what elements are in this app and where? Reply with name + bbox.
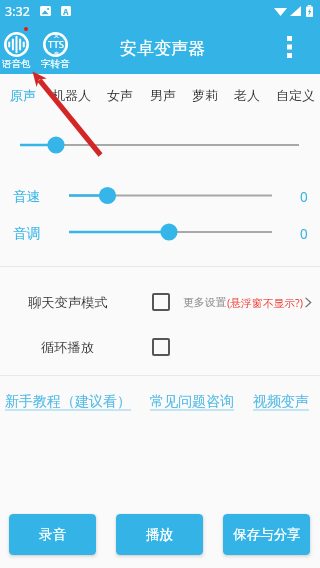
staticText: 0 — [300, 188, 308, 206]
button[interactable]: 男声 — [150, 87, 176, 103]
button[interactable]: Slider — [0, 0, 320, 568]
button[interactable]: Checkbox — [151, 292, 171, 312]
staticText: 0 — [300, 225, 308, 243]
staticText: 原声 — [10, 87, 36, 103]
staticText: A — [63, 6, 69, 16]
staticText: 字转音 — [41, 58, 70, 70]
staticText: 老人 — [234, 87, 260, 103]
staticText: 安卓变声器 — [120, 38, 205, 59]
staticText: 语音包 — [2, 58, 31, 70]
staticText: 保存与分享 — [233, 526, 301, 543]
button[interactable]: 语音包 — [2, 32, 31, 70]
button[interactable]: 录音 — [9, 514, 96, 555]
button[interactable]: 聊天变声模式 — [0, 283, 136, 321]
staticText: 自定义 — [276, 87, 315, 103]
staticText: 萝莉 — [192, 87, 218, 103]
button[interactable]: 新手教程（建议看） — [5, 393, 131, 411]
button[interactable]: 女声 — [107, 87, 133, 103]
button[interactable]: Slider — [0, 0, 320, 568]
button[interactable]: 萝莉 — [192, 87, 218, 103]
button[interactable]: 老人 — [234, 87, 260, 103]
staticText: 循环播放 — [41, 339, 95, 356]
staticText: 视频变声 — [253, 393, 309, 411]
staticText: 常见问题咨询 — [150, 393, 234, 411]
staticText: 机器人 — [52, 87, 91, 103]
button[interactable]: 循环播放 — [0, 330, 136, 364]
button[interactable]: Slider — [0, 0, 320, 568]
staticText: 播放 — [146, 526, 173, 543]
button[interactable]: More options — [272, 30, 306, 64]
staticText: 新手教程（建议看） — [5, 393, 131, 411]
staticText: 聊天变声模式 — [28, 294, 108, 311]
staticText: 男声 — [150, 87, 176, 103]
staticText: TTS — [48, 38, 64, 51]
button[interactable]: 播放 — [116, 514, 203, 555]
button[interactable]: 文 — [41, 32, 70, 70]
button[interactable]: 原声 — [10, 87, 36, 103]
button[interactable]: 常见问题咨询 — [150, 393, 234, 411]
staticText: 音调 — [13, 225, 40, 242]
button[interactable]: 自定义 — [276, 87, 315, 103]
button[interactable]: 视频变声 — [253, 393, 309, 411]
staticText: 音 — [54, 51, 59, 57]
staticText: 音速 — [13, 188, 40, 205]
staticText: 文 — [54, 32, 59, 38]
staticText: 3:32 — [5, 3, 30, 20]
staticText: 更多设置 — [183, 296, 227, 310]
button[interactable]: 机器人 — [52, 87, 91, 103]
button[interactable]: Checkbox — [151, 337, 171, 357]
staticText: 女声 — [107, 87, 133, 103]
button[interactable]: 保存与分享 — [223, 514, 310, 555]
staticText: (悬浮窗不显示?) — [227, 295, 303, 310]
button[interactable]: 更多设置 — [183, 295, 311, 310]
staticText: 录音 — [39, 526, 66, 543]
